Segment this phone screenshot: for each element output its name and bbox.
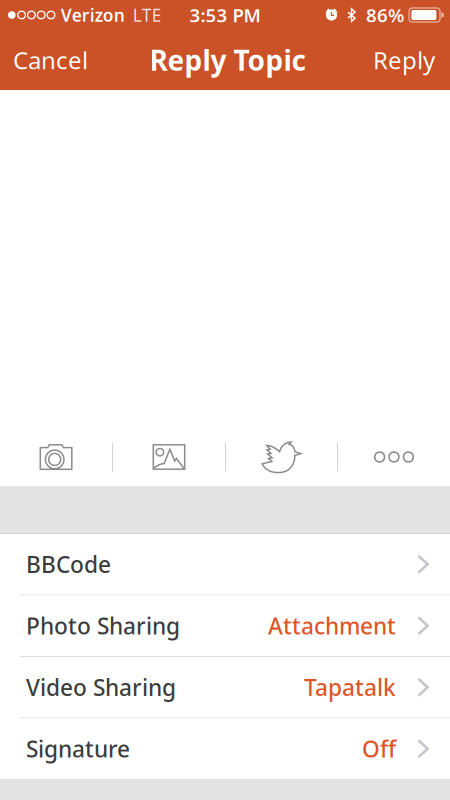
button[interactable]: Photo Library [113, 428, 225, 486]
staticText: 86% [366, 3, 404, 27]
button[interactable]: Signature [0, 718, 450, 779]
staticText: Reply Topic [149, 41, 305, 79]
staticText: 3:53 PM [189, 3, 260, 27]
staticText: Off [362, 734, 396, 764]
staticText: Attachment [268, 611, 396, 641]
staticText: LTE [133, 3, 162, 26]
button[interactable]: Cancel [0, 32, 102, 88]
button[interactable]: Video Sharing [0, 657, 450, 718]
staticText: Reply [373, 44, 435, 76]
staticText: BBCode [26, 549, 111, 579]
staticText: Video Sharing [26, 672, 176, 702]
staticText: Photo Sharing [26, 611, 180, 641]
staticText: Cancel [13, 44, 88, 76]
button[interactable]: BBCode [0, 534, 450, 595]
button[interactable]: More options [338, 428, 450, 486]
staticText: Verizon [61, 3, 125, 26]
staticText: Signature [26, 734, 130, 764]
staticText: Tapatalk [304, 672, 396, 702]
button[interactable]: Photo Sharing [0, 595, 450, 657]
button[interactable]: Reply [359, 32, 450, 88]
button[interactable]: Camera [0, 428, 112, 486]
button[interactable]: Share to Twitter [226, 428, 337, 486]
